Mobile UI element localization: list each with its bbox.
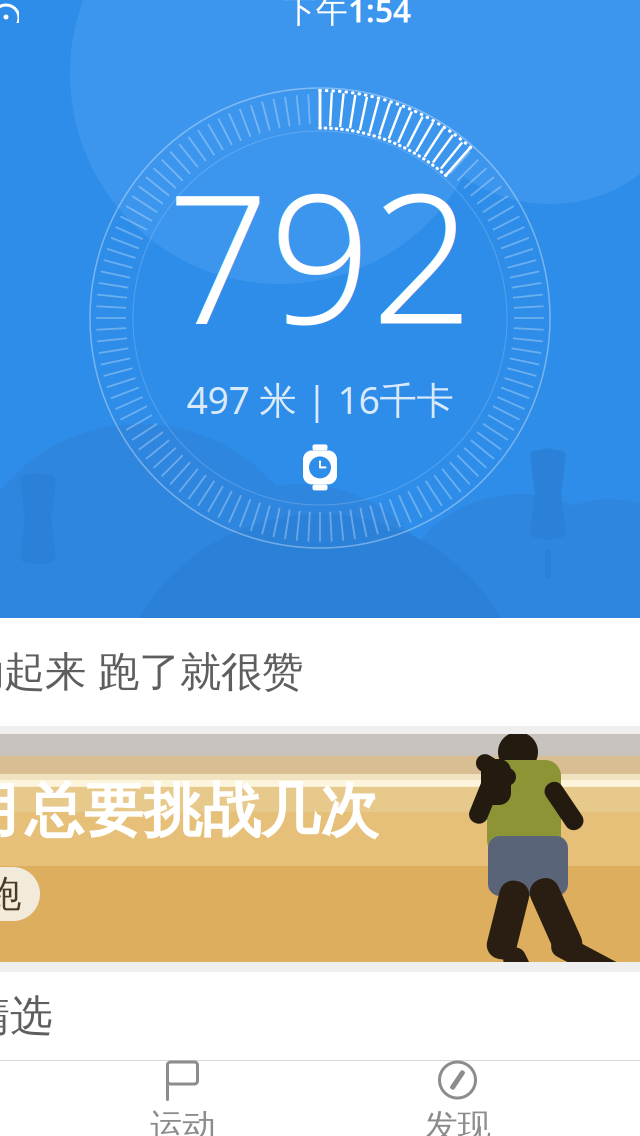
staticText: 周末动起来 跑了就很赞 bbox=[0, 647, 303, 697]
staticText: 立即开跑 bbox=[0, 871, 21, 917]
button[interactable]: 社区精选 bbox=[0, 972, 640, 1060]
button[interactable]: 每个月总要挑战几次 bbox=[0, 734, 640, 962]
button[interactable]: 发现 bbox=[320, 1061, 595, 1136]
staticText: 社区精选 bbox=[0, 990, 53, 1042]
staticText: 发现 bbox=[424, 1106, 490, 1136]
staticText: 每个月总要挑战几次 bbox=[0, 775, 379, 847]
staticText: 497 米 | 16千卡 bbox=[186, 375, 453, 424]
button[interactable]: 连接手表 bbox=[293, 434, 347, 500]
staticText: 运动 bbox=[149, 1106, 215, 1136]
button[interactable]: 运动 bbox=[45, 1061, 320, 1136]
staticText: 下午1:54 bbox=[284, 0, 411, 31]
staticText: 792 bbox=[167, 136, 473, 373]
button[interactable]: 周末动起来 跑了就很赞 bbox=[0, 618, 640, 726]
